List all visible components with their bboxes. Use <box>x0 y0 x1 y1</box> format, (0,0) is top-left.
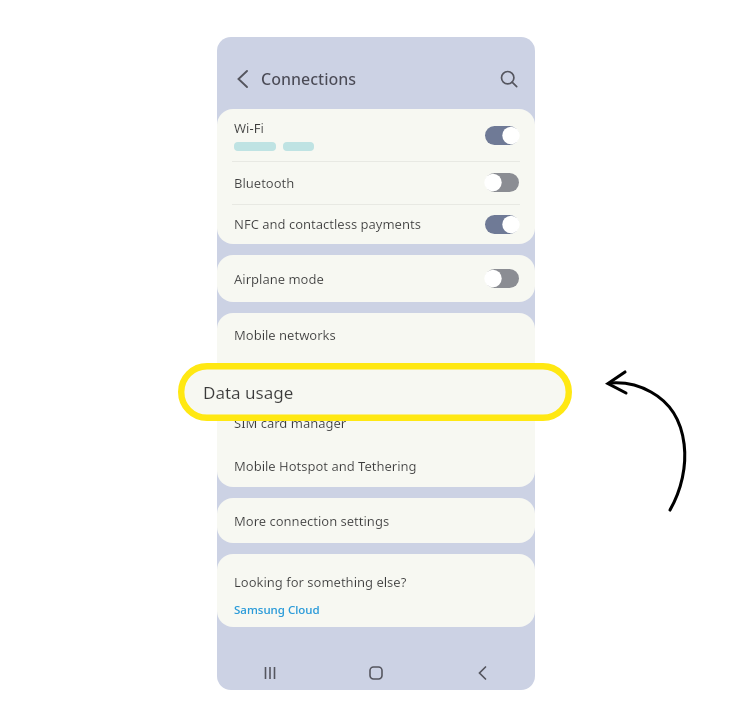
button[interactable]: Mobile Hotspot and Tethering <box>217 444 535 487</box>
button[interactable]: Data usage <box>178 363 572 421</box>
staticText: Wi-Fi <box>234 119 264 137</box>
button[interactable]: NFC and contactless payments <box>217 204 535 244</box>
button[interactable]: Home <box>323 656 429 690</box>
staticText: Samsung Cloud <box>234 602 320 618</box>
button[interactable]: Toggle NFC and contactless payments <box>485 215 519 234</box>
staticText: Data usage <box>203 381 294 404</box>
button[interactable]: Back <box>226 62 260 96</box>
button[interactable]: Back <box>429 656 535 690</box>
button[interactable]: Search <box>492 62 526 96</box>
staticText: More connection settings <box>234 512 390 530</box>
staticText: Bluetooth <box>234 174 295 192</box>
staticText: Looking for something else? <box>234 573 407 591</box>
button[interactable]: Bluetooth <box>217 161 535 204</box>
button[interactable]: Recents <box>217 656 323 690</box>
button[interactable]: Toggle Airplane mode <box>485 269 519 288</box>
button[interactable]: SIM card manager <box>217 401 535 444</box>
staticText: SIM card manager <box>234 414 347 432</box>
button[interactable]: Wi-Fi <box>217 109 535 161</box>
staticText: Mobile networks <box>234 326 336 344</box>
button[interactable]: Toggle Wi-Fi <box>485 126 519 145</box>
staticText: Airplane mode <box>234 270 324 288</box>
staticText: NFC and contactless payments <box>234 215 421 233</box>
button[interactable]: Samsung Cloud <box>234 602 320 618</box>
button[interactable]: Toggle Bluetooth <box>485 173 519 192</box>
button[interactable]: More connection settings <box>217 498 535 543</box>
button[interactable]: Mobile networks <box>217 313 535 357</box>
staticText: Mobile Hotspot and Tethering <box>234 457 417 475</box>
button[interactable]: Data usage <box>217 357 535 401</box>
button[interactable]: Airplane mode <box>217 255 535 302</box>
staticText: Connections <box>261 68 357 90</box>
